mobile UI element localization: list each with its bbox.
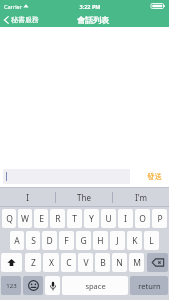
- staticText: Q: [6, 213, 13, 225]
- staticText: I: [26, 192, 29, 203]
- staticText: W: [21, 213, 29, 225]
- button[interactable]: I: [118, 209, 133, 228]
- button[interactable]: 發送: [140, 169, 169, 184]
- button[interactable]: Y: [84, 209, 99, 228]
- button[interactable]: W: [18, 209, 32, 228]
- button[interactable]: N: [112, 253, 127, 272]
- button[interactable]: Dictate: [45, 276, 60, 295]
- button[interactable]: Shift: [1, 253, 22, 272]
- staticText: L: [149, 235, 154, 247]
- button[interactable]: I'm: [113, 188, 169, 206]
- staticText: R: [55, 213, 61, 225]
- button[interactable]: K: [127, 231, 142, 250]
- staticText: 秘書服務: [11, 15, 39, 24]
- staticText: 發送: [147, 172, 162, 181]
- button[interactable]: L: [144, 231, 159, 250]
- staticText: 123: [6, 282, 17, 290]
- button[interactable]: space: [62, 276, 128, 295]
- staticText: 會話列表: [77, 15, 109, 25]
- button[interactable]: Emoji: [23, 276, 43, 295]
- staticText: F: [64, 235, 69, 247]
- button[interactable]: E: [34, 209, 48, 228]
- staticText: V: [83, 257, 89, 269]
- button[interactable]: F: [59, 231, 74, 250]
- staticText: return: [138, 281, 161, 291]
- staticText: K: [132, 235, 138, 247]
- button[interactable]: return: [130, 276, 168, 295]
- staticText: G: [80, 235, 87, 247]
- staticText: I'm: [135, 192, 147, 203]
- button[interactable]: R: [50, 209, 65, 228]
- button[interactable]: B: [95, 253, 110, 272]
- button[interactable]: T: [67, 209, 82, 228]
- staticText: T: [72, 213, 77, 225]
- staticText: Carrier: [4, 3, 22, 10]
- button[interactable]: Z: [25, 253, 41, 272]
- button[interactable]: D: [42, 231, 57, 250]
- staticText: N: [116, 257, 123, 269]
- button[interactable]: A: [10, 231, 24, 250]
- staticText: O: [139, 213, 146, 225]
- staticText: B: [100, 257, 106, 269]
- button[interactable]: G: [76, 231, 91, 250]
- button[interactable]: H: [93, 231, 108, 250]
- staticText: The: [77, 192, 91, 203]
- button[interactable]: Q: [2, 209, 16, 228]
- button[interactable]: Backspace: [147, 253, 168, 272]
- staticText: P: [157, 213, 163, 225]
- button[interactable]: S: [26, 231, 40, 250]
- button[interactable]: U: [101, 209, 116, 228]
- staticText: A: [14, 235, 20, 247]
- button[interactable]: O: [135, 209, 150, 228]
- staticText: X: [49, 257, 54, 269]
- button[interactable]: M: [129, 253, 144, 272]
- button[interactable]: 秘書服務: [0, 13, 45, 26]
- button[interactable]: J: [110, 231, 125, 250]
- staticText: H: [97, 235, 104, 247]
- button[interactable]: V: [78, 253, 93, 272]
- staticText: space: [85, 281, 106, 291]
- button[interactable]: X: [43, 253, 59, 272]
- button[interactable]: The: [56, 188, 112, 206]
- staticText: Y: [89, 213, 94, 225]
- staticText: E: [39, 213, 44, 225]
- staticText: S: [31, 235, 36, 247]
- staticText: Z: [31, 257, 36, 269]
- staticText: J: [116, 235, 119, 247]
- staticText: I: [124, 213, 127, 225]
- staticText: 3:22 PM: [79, 3, 101, 10]
- button[interactable]: I: [0, 188, 55, 206]
- button[interactable]: P: [152, 209, 167, 228]
- button[interactable]: C: [61, 253, 76, 272]
- button[interactable]: [3, 169, 130, 184]
- staticText: U: [105, 213, 112, 225]
- staticText: M: [133, 257, 141, 269]
- staticText: D: [46, 235, 53, 247]
- button[interactable]: 123: [1, 276, 21, 295]
- staticText: C: [66, 257, 72, 269]
